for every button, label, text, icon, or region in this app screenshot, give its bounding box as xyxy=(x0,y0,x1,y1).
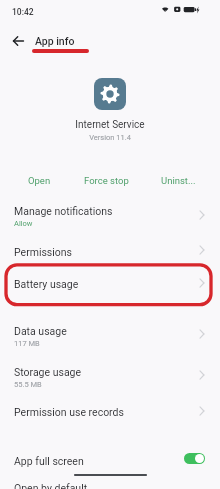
staticText: Internet Service xyxy=(0,119,220,131)
button[interactable]: Battery usage xyxy=(0,270,220,302)
staticText: Allow xyxy=(14,219,33,228)
staticText: Version 11.4 xyxy=(0,133,220,142)
staticText: Permissions xyxy=(14,246,73,258)
staticText: Data usage xyxy=(14,325,67,337)
button[interactable]: Manage notifications xyxy=(0,197,220,239)
button[interactable]: Open by default xyxy=(0,474,220,489)
button[interactable]: Permissions xyxy=(0,238,220,270)
button[interactable]: Open xyxy=(28,175,51,186)
staticText: Open by default xyxy=(14,482,88,489)
staticText: 10:42 xyxy=(12,7,34,17)
staticText: App full screen xyxy=(14,455,84,467)
staticText: 55.5 MB xyxy=(14,380,42,389)
staticText: 117 MB xyxy=(14,339,40,348)
button[interactable]: Data usage xyxy=(0,317,220,359)
button[interactable]: App full screen xyxy=(0,447,220,479)
staticText: Battery usage xyxy=(14,278,79,290)
staticText: Storage usage xyxy=(14,366,82,378)
button[interactable]: Permission use records xyxy=(0,398,220,430)
staticText: Permission use records xyxy=(14,406,124,418)
button[interactable]: Back xyxy=(9,31,29,51)
button[interactable]: Force stop xyxy=(84,175,129,186)
staticText: App info xyxy=(35,35,75,47)
button[interactable]: Uninst... xyxy=(161,175,196,186)
staticText: Manage notifications xyxy=(14,205,113,217)
button[interactable]: Storage usage xyxy=(0,358,220,400)
